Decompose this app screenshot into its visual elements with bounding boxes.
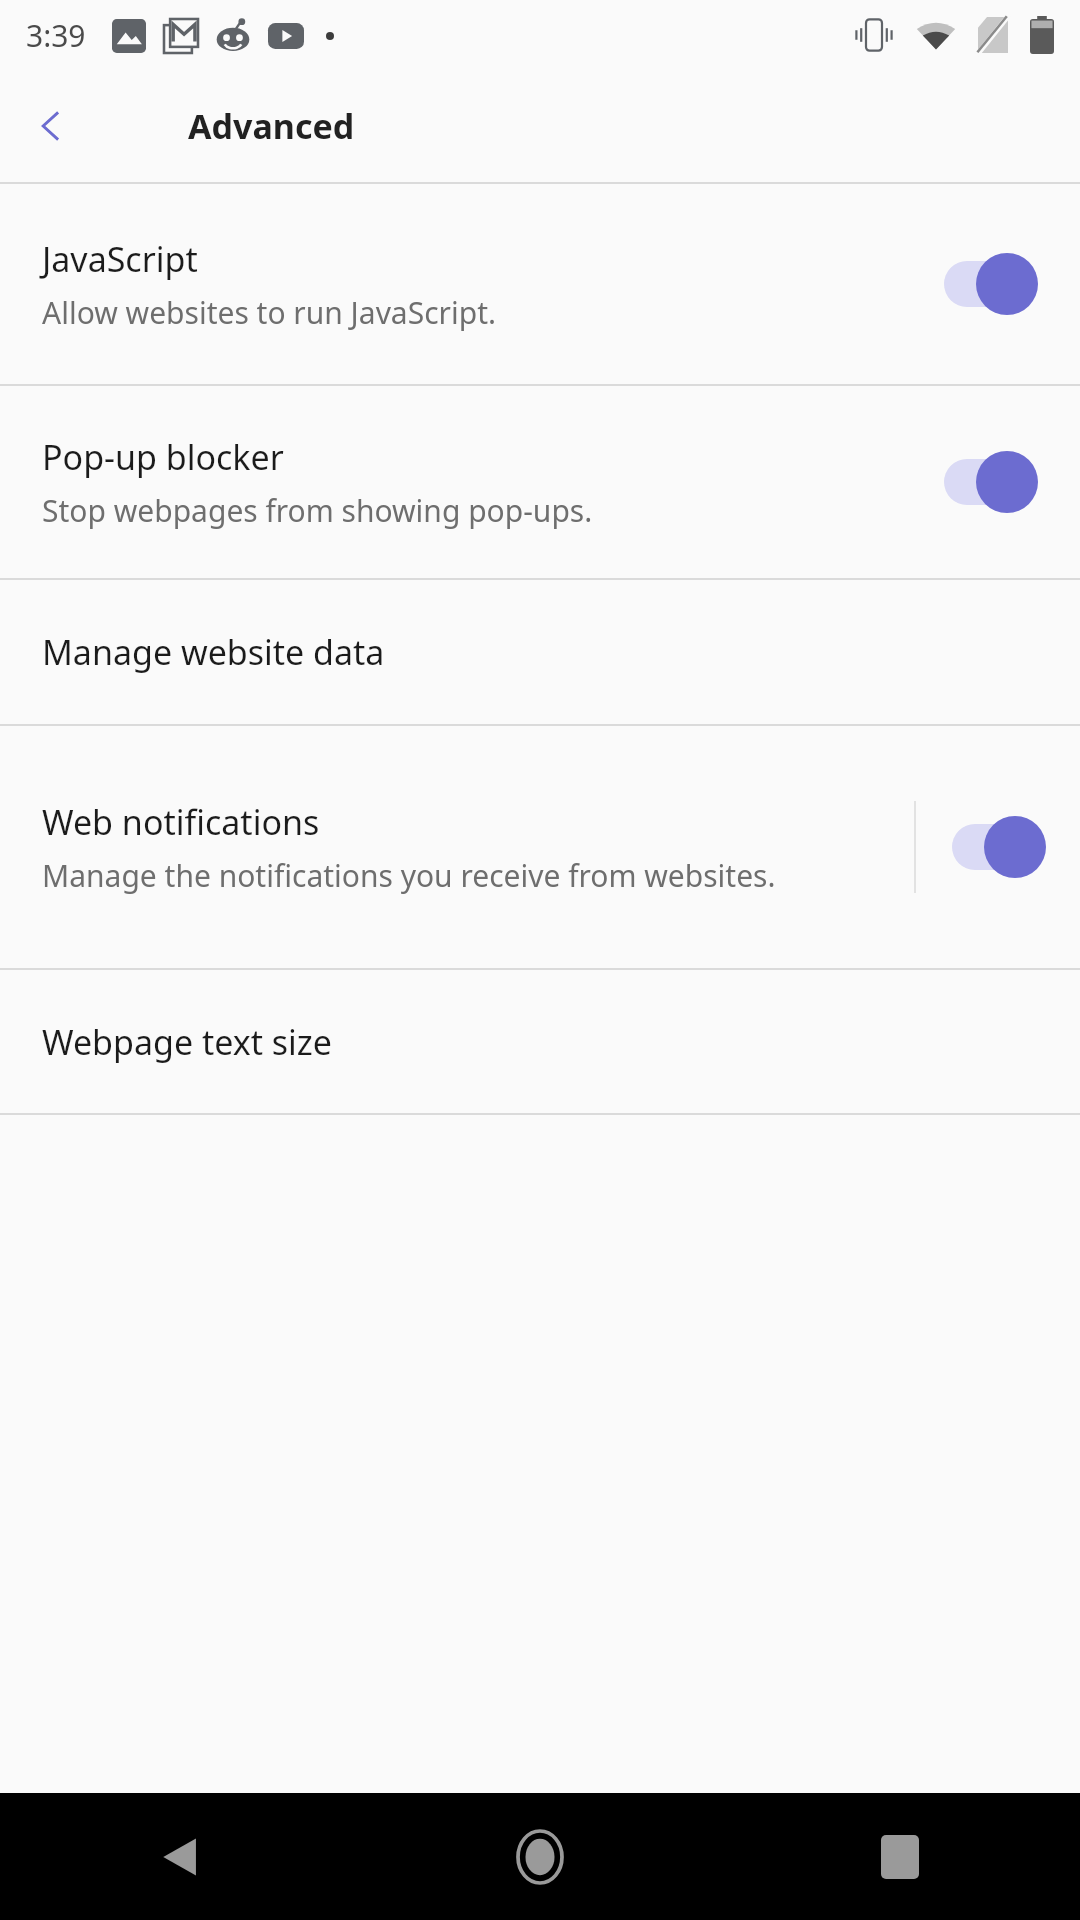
- button[interactable]: Back: [14, 88, 90, 164]
- button[interactable]: Back: [0, 1793, 360, 1920]
- staticText: Manage the notifications you receive fro…: [42, 855, 776, 896]
- staticText: Advanced: [188, 103, 355, 149]
- staticText: Manage website data: [42, 629, 385, 675]
- button[interactable]: JavaScript toggle: [900, 184, 1080, 384]
- button[interactable]: Manage website data: [0, 580, 1080, 724]
- staticText: Allow websites to run JavaScript.: [42, 292, 497, 333]
- button[interactable]: Webpage text size: [0, 970, 1080, 1113]
- button[interactable]: Web notifications toggle: [916, 726, 1080, 968]
- staticText: Webpage text size: [42, 1019, 333, 1065]
- button[interactable]: Web notifications: [0, 726, 1080, 968]
- staticText: 3:39: [26, 15, 86, 56]
- button[interactable]: Pop-up blocker toggle: [900, 386, 1080, 578]
- staticText: Web notifications: [42, 799, 320, 845]
- button[interactable]: Recent apps: [720, 1793, 1080, 1920]
- staticText: Stop webpages from showing pop-ups.: [42, 490, 593, 531]
- staticText: Pop-up blocker: [42, 434, 284, 480]
- button[interactable]: Home: [360, 1793, 720, 1920]
- button[interactable]: JavaScript: [0, 184, 1080, 384]
- staticText: JavaScript: [42, 236, 198, 282]
- button[interactable]: Pop-up blocker: [0, 386, 1080, 578]
